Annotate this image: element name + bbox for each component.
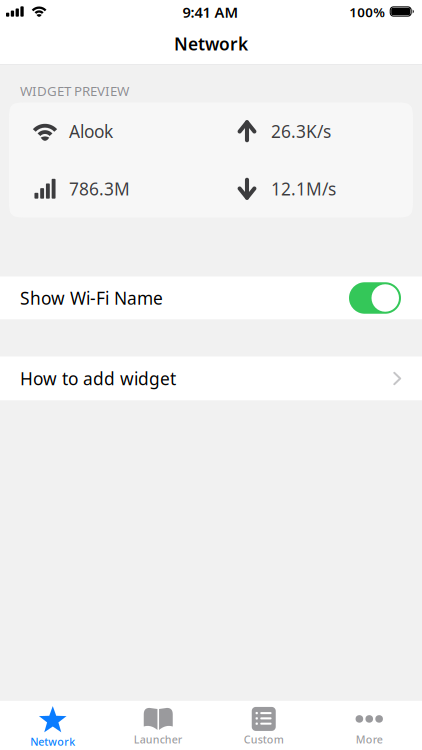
button[interactable]: Launcher: [105, 700, 211, 750]
staticText: Custom: [244, 732, 284, 746]
staticText: Alook: [69, 120, 113, 143]
button[interactable]: Network: [0, 700, 105, 750]
button[interactable]: Show Wi-Fi Name: [0, 276, 422, 319]
staticText: WIDGET PREVIEW: [20, 82, 129, 100]
staticText: 100%: [349, 3, 385, 21]
button[interactable]: How to add widget: [0, 356, 422, 400]
staticText: 26.3K/s: [271, 120, 331, 143]
staticText: Network: [174, 32, 248, 55]
staticText: 786.3M: [69, 177, 130, 200]
staticText: More: [356, 732, 383, 746]
staticText: 9:41 AM: [182, 2, 238, 22]
button[interactable]: More: [316, 700, 422, 750]
staticText: Network: [30, 734, 75, 749]
staticText: Launcher: [134, 732, 183, 746]
button[interactable]: Custom: [211, 700, 316, 750]
staticText: 12.1M/s: [271, 177, 336, 200]
staticText: How to add widget: [20, 367, 176, 390]
staticText: Show Wi-Fi Name: [20, 286, 163, 309]
